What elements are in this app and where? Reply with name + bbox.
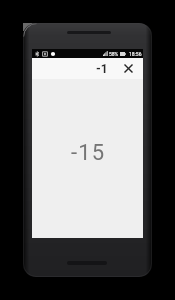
button[interactable]: -1 bbox=[93, 58, 111, 79]
staticText: -15 bbox=[71, 140, 106, 166]
button[interactable]: Close bbox=[119, 58, 137, 79]
staticText: -1 bbox=[96, 62, 108, 76]
staticText: 18:56 bbox=[129, 51, 142, 57]
staticText: 58% bbox=[109, 51, 119, 57]
